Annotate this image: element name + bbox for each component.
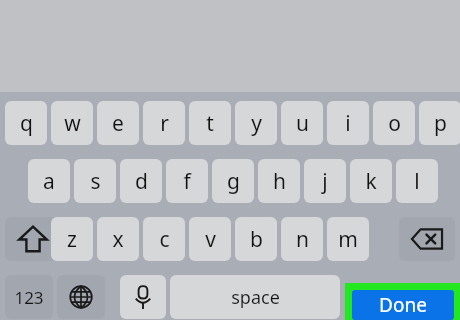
button[interactable]: y bbox=[235, 101, 277, 145]
staticText: j bbox=[322, 167, 328, 196]
button[interactable]: g bbox=[212, 159, 254, 203]
staticText: p bbox=[434, 109, 447, 138]
button[interactable]: Backspace bbox=[399, 217, 455, 261]
button[interactable]: h bbox=[258, 159, 300, 203]
staticText: Done bbox=[379, 292, 427, 318]
button[interactable]: e bbox=[97, 101, 139, 145]
staticText: i bbox=[345, 109, 351, 138]
button[interactable]: Done bbox=[352, 290, 454, 320]
staticText: f bbox=[183, 167, 191, 196]
button[interactable]: j bbox=[304, 159, 346, 203]
button[interactable]: o bbox=[373, 101, 415, 145]
button[interactable]: Shift bbox=[5, 217, 61, 261]
button[interactable]: r bbox=[143, 101, 185, 145]
button[interactable]: n bbox=[281, 217, 323, 261]
staticText: d bbox=[135, 167, 148, 196]
button[interactable]: c bbox=[143, 217, 185, 261]
button[interactable]: p bbox=[419, 101, 460, 145]
button[interactable]: Change keyboard language bbox=[57, 275, 105, 319]
button[interactable]: b bbox=[235, 217, 277, 261]
staticText: s bbox=[90, 167, 101, 196]
staticText: e bbox=[112, 109, 124, 138]
button[interactable]: q bbox=[5, 101, 47, 145]
button[interactable]: 123 bbox=[5, 275, 53, 319]
button[interactable]: m bbox=[327, 217, 369, 261]
button[interactable]: x bbox=[97, 217, 139, 261]
staticText: h bbox=[273, 167, 286, 196]
button[interactable]: t bbox=[189, 101, 231, 145]
staticText: b bbox=[250, 225, 263, 254]
staticText: m bbox=[338, 225, 358, 254]
button[interactable]: s bbox=[74, 159, 116, 203]
button[interactable]: a bbox=[28, 159, 70, 203]
staticText: z bbox=[67, 225, 77, 254]
staticText: c bbox=[159, 225, 170, 254]
staticText: w bbox=[64, 109, 81, 138]
button[interactable]: d bbox=[120, 159, 162, 203]
button[interactable]: space bbox=[170, 275, 340, 319]
staticText: l bbox=[414, 167, 420, 196]
button[interactable]: l bbox=[396, 159, 438, 203]
staticText: v bbox=[205, 225, 216, 254]
button[interactable]: Dictate bbox=[120, 275, 166, 319]
staticText: 123 bbox=[14, 286, 44, 309]
button[interactable]: f bbox=[166, 159, 208, 203]
button[interactable]: w bbox=[51, 101, 93, 145]
button[interactable]: v bbox=[189, 217, 231, 261]
button[interactable]: u bbox=[281, 101, 323, 145]
button[interactable]: z bbox=[51, 217, 93, 261]
button[interactable]: i bbox=[327, 101, 369, 145]
staticText: space bbox=[231, 285, 280, 310]
staticText: n bbox=[296, 225, 309, 254]
staticText: o bbox=[388, 109, 401, 138]
staticText: x bbox=[112, 225, 124, 254]
staticText: k bbox=[365, 167, 377, 196]
staticText: t bbox=[206, 109, 214, 138]
staticText: g bbox=[227, 167, 240, 196]
staticText: u bbox=[296, 109, 309, 138]
staticText: r bbox=[160, 109, 169, 138]
staticText: y bbox=[251, 109, 262, 138]
staticText: a bbox=[43, 167, 55, 196]
button[interactable]: k bbox=[350, 159, 392, 203]
staticText: q bbox=[20, 109, 33, 138]
